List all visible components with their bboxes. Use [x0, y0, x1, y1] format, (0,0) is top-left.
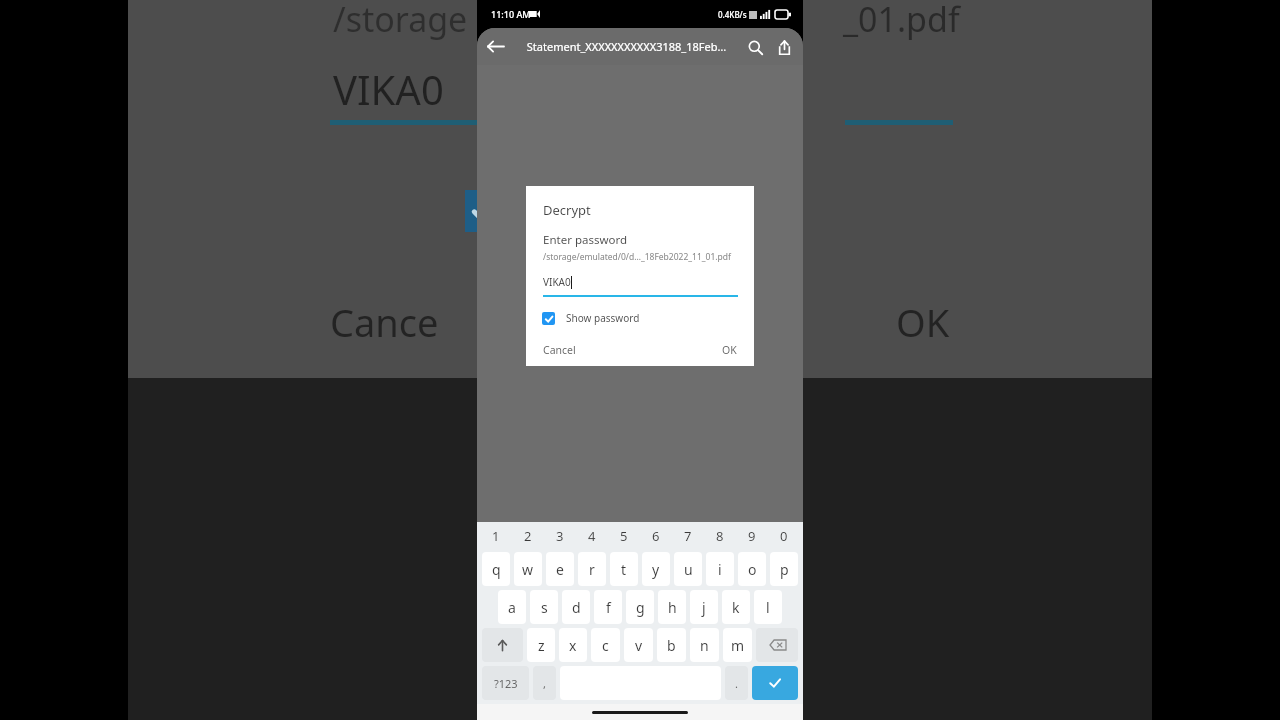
staticText: Statement_XXXXXXXXXXX3188_18Feb…: [514, 39, 739, 54]
staticText: /storage/emulated/0/d…_18Feb2022_11_01.p…: [543, 251, 731, 263]
button[interactable]: Cancel: [536, 339, 583, 361]
staticText: 0: [780, 527, 788, 545]
button[interactable]: l: [754, 590, 782, 624]
button[interactable]: 7: [672, 522, 704, 550]
button[interactable]: Search: [739, 31, 771, 63]
staticText: .: [735, 676, 738, 691]
staticText: z: [538, 636, 545, 655]
staticText: k: [732, 598, 740, 617]
staticText: u: [684, 560, 693, 579]
button[interactable]: ,: [533, 666, 556, 700]
button[interactable]: 3: [544, 522, 576, 550]
button[interactable]: j: [690, 590, 718, 624]
staticText: v: [635, 636, 643, 655]
staticText: Sh: [526, 192, 571, 244]
staticText: 11:10 AM: [491, 8, 531, 20]
button[interactable]: 1: [480, 522, 512, 550]
staticText: t: [621, 560, 627, 579]
staticText: ?123: [494, 676, 518, 691]
staticText: m: [731, 636, 745, 655]
staticText: a: [508, 598, 516, 617]
staticText: 3: [556, 527, 564, 545]
staticText: ,: [543, 676, 546, 691]
staticText: Decrypt: [543, 201, 591, 219]
button[interactable]: 2: [512, 522, 544, 550]
staticText: Cance: [330, 296, 439, 348]
button[interactable]: n: [690, 628, 719, 662]
button[interactable]: 5: [608, 522, 640, 550]
staticText: 9: [748, 527, 756, 545]
button[interactable]: t: [610, 552, 638, 586]
staticText: 8: [716, 527, 724, 545]
staticText: f: [606, 598, 611, 617]
staticText: q: [492, 560, 501, 579]
staticText: g: [636, 598, 645, 617]
staticText: OK: [896, 296, 950, 348]
button[interactable]: Back: [477, 28, 514, 65]
button[interactable]: b: [657, 628, 686, 662]
staticText: 0.4KB/s: [718, 9, 747, 20]
staticText: n: [700, 636, 709, 655]
button[interactable]: q: [482, 552, 510, 586]
staticText: b: [667, 636, 676, 655]
staticText: 6: [652, 527, 660, 545]
staticText: Show password: [566, 311, 640, 325]
button[interactable]: .: [725, 666, 748, 700]
staticText: l: [766, 598, 770, 617]
button[interactable]: i: [706, 552, 734, 586]
button[interactable]: 0: [768, 522, 800, 550]
staticText: Enter password: [543, 232, 628, 248]
button[interactable]: 4: [576, 522, 608, 550]
button[interactable]: d: [562, 590, 590, 624]
staticText: w: [522, 560, 534, 579]
staticText: o: [748, 560, 757, 579]
staticText: s: [541, 598, 548, 617]
button[interactable]: h: [658, 590, 686, 624]
button[interactable]: s: [530, 590, 558, 624]
button[interactable]: e: [546, 552, 574, 586]
button[interactable]: [756, 628, 798, 662]
button[interactable]: 9: [736, 522, 768, 550]
staticText: _01.pdf: [843, 0, 960, 42]
button[interactable]: OK: [715, 339, 744, 361]
staticText: 2: [524, 527, 532, 545]
button[interactable]: o: [738, 552, 766, 586]
staticText: r: [589, 560, 595, 579]
button[interactable]: Show password: [542, 311, 754, 325]
button[interactable]: z: [527, 628, 555, 662]
button[interactable]: w: [514, 552, 542, 586]
button[interactable]: u: [674, 552, 702, 586]
staticText: c: [602, 636, 609, 655]
button[interactable]: f: [594, 590, 622, 624]
staticText: 5: [620, 527, 628, 545]
staticText: Cancel: [543, 343, 576, 357]
staticText: e: [556, 560, 564, 579]
staticText: i: [718, 560, 722, 579]
staticText: /storage: [333, 0, 468, 42]
button[interactable]: [482, 628, 523, 662]
button[interactable]: x: [559, 628, 587, 662]
button[interactable]: g: [626, 590, 654, 624]
button[interactable]: m: [723, 628, 752, 662]
staticText: VIKA0: [543, 275, 571, 289]
staticText: p: [780, 560, 789, 579]
button[interactable]: c: [591, 628, 620, 662]
button[interactable]: 6: [640, 522, 672, 550]
button[interactable]: ?123: [482, 666, 529, 700]
staticText: 4: [588, 527, 596, 545]
button[interactable]: k: [722, 590, 750, 624]
button[interactable]: 8: [704, 522, 736, 550]
staticText: 7: [684, 527, 692, 545]
staticText: j: [702, 598, 706, 617]
button[interactable]: y: [642, 552, 670, 586]
button[interactable]: Share: [771, 31, 797, 63]
button[interactable]: r: [578, 552, 606, 586]
button[interactable]: [752, 666, 798, 700]
staticText: d: [572, 598, 581, 617]
button[interactable]: v: [624, 628, 653, 662]
button[interactable]: p: [770, 552, 798, 586]
staticText: VIKA0: [333, 62, 444, 116]
button[interactable]: a: [498, 590, 526, 624]
staticText: h: [668, 598, 677, 617]
